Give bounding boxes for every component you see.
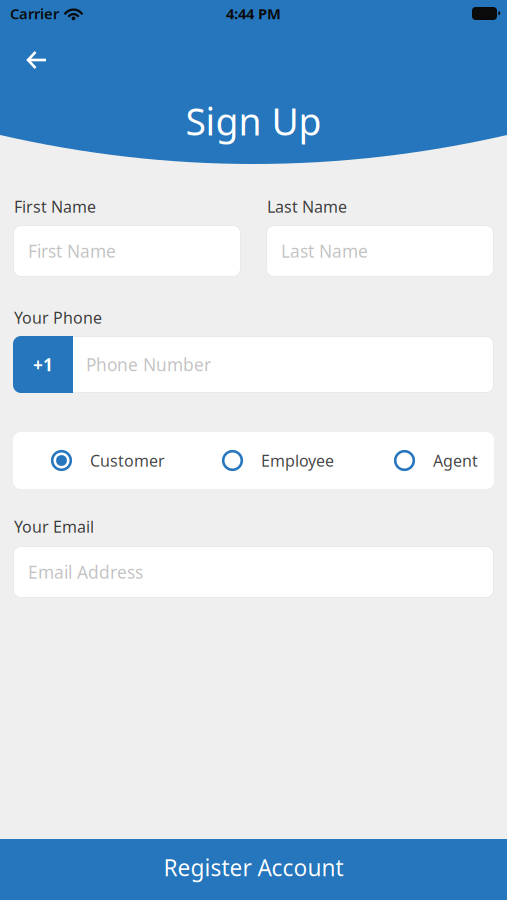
staticText: Phone Number bbox=[86, 353, 211, 376]
button[interactable] bbox=[17, 42, 57, 78]
staticText: Email Address bbox=[28, 560, 143, 583]
staticText: Last Name bbox=[267, 196, 347, 217]
staticText: Your Email bbox=[14, 516, 94, 537]
staticText: Register Account bbox=[163, 852, 343, 882]
button[interactable]: Register Account bbox=[0, 839, 507, 900]
staticText: Customer bbox=[90, 450, 165, 471]
button[interactable]: Customer bbox=[51, 432, 165, 489]
staticText: Agent bbox=[433, 450, 478, 471]
staticText: Employee bbox=[261, 450, 334, 471]
staticText: +1 bbox=[33, 353, 53, 376]
staticText: Carrier bbox=[10, 4, 59, 23]
staticText: Your Phone bbox=[14, 307, 102, 328]
button[interactable]: Employee bbox=[222, 432, 334, 489]
staticText: Sign Up bbox=[185, 96, 321, 146]
staticText: Last Name bbox=[281, 239, 368, 262]
button[interactable]: +1 bbox=[13, 336, 73, 393]
staticText: First Name bbox=[28, 239, 116, 262]
staticText: 4:44 PM bbox=[226, 4, 281, 23]
staticText: First Name bbox=[14, 196, 96, 217]
button[interactable]: Agent bbox=[394, 432, 478, 489]
